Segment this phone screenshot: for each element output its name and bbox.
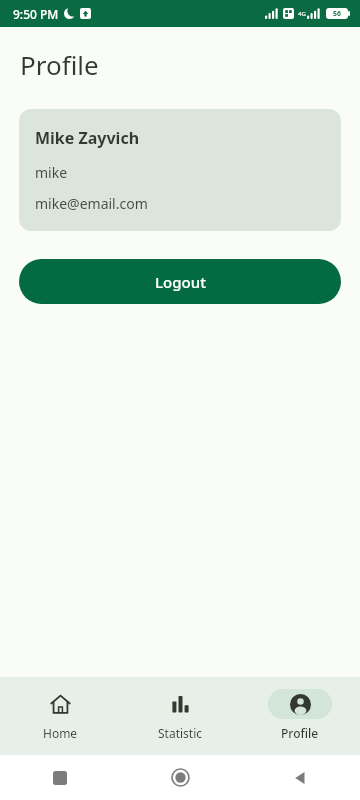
button[interactable]: Logout xyxy=(19,259,341,304)
other: Statistic xyxy=(170,694,191,715)
staticText: Profile xyxy=(20,47,99,82)
staticText: 9:50 PM xyxy=(13,6,59,22)
other: Back xyxy=(292,770,308,786)
staticText: Logout xyxy=(155,272,206,292)
staticText: Mike Zayvich xyxy=(35,127,140,149)
button[interactable]: Home xyxy=(0,677,120,741)
staticText: Statistic xyxy=(158,725,203,741)
other: Home xyxy=(171,768,190,787)
other: Home xyxy=(50,694,71,715)
staticText: mike@email.com xyxy=(35,194,148,213)
staticText: 56 xyxy=(333,9,342,19)
other: Profile xyxy=(290,694,311,715)
button[interactable]: Profile xyxy=(240,677,360,741)
staticText: mike xyxy=(35,163,68,182)
button[interactable]: Mike Zayvich xyxy=(19,109,341,231)
other: Recents xyxy=(53,771,67,785)
staticText: 4G xyxy=(298,10,306,18)
staticText: Home xyxy=(43,725,78,741)
staticText: Profile xyxy=(281,725,319,741)
button[interactable]: Statistic xyxy=(120,677,240,741)
